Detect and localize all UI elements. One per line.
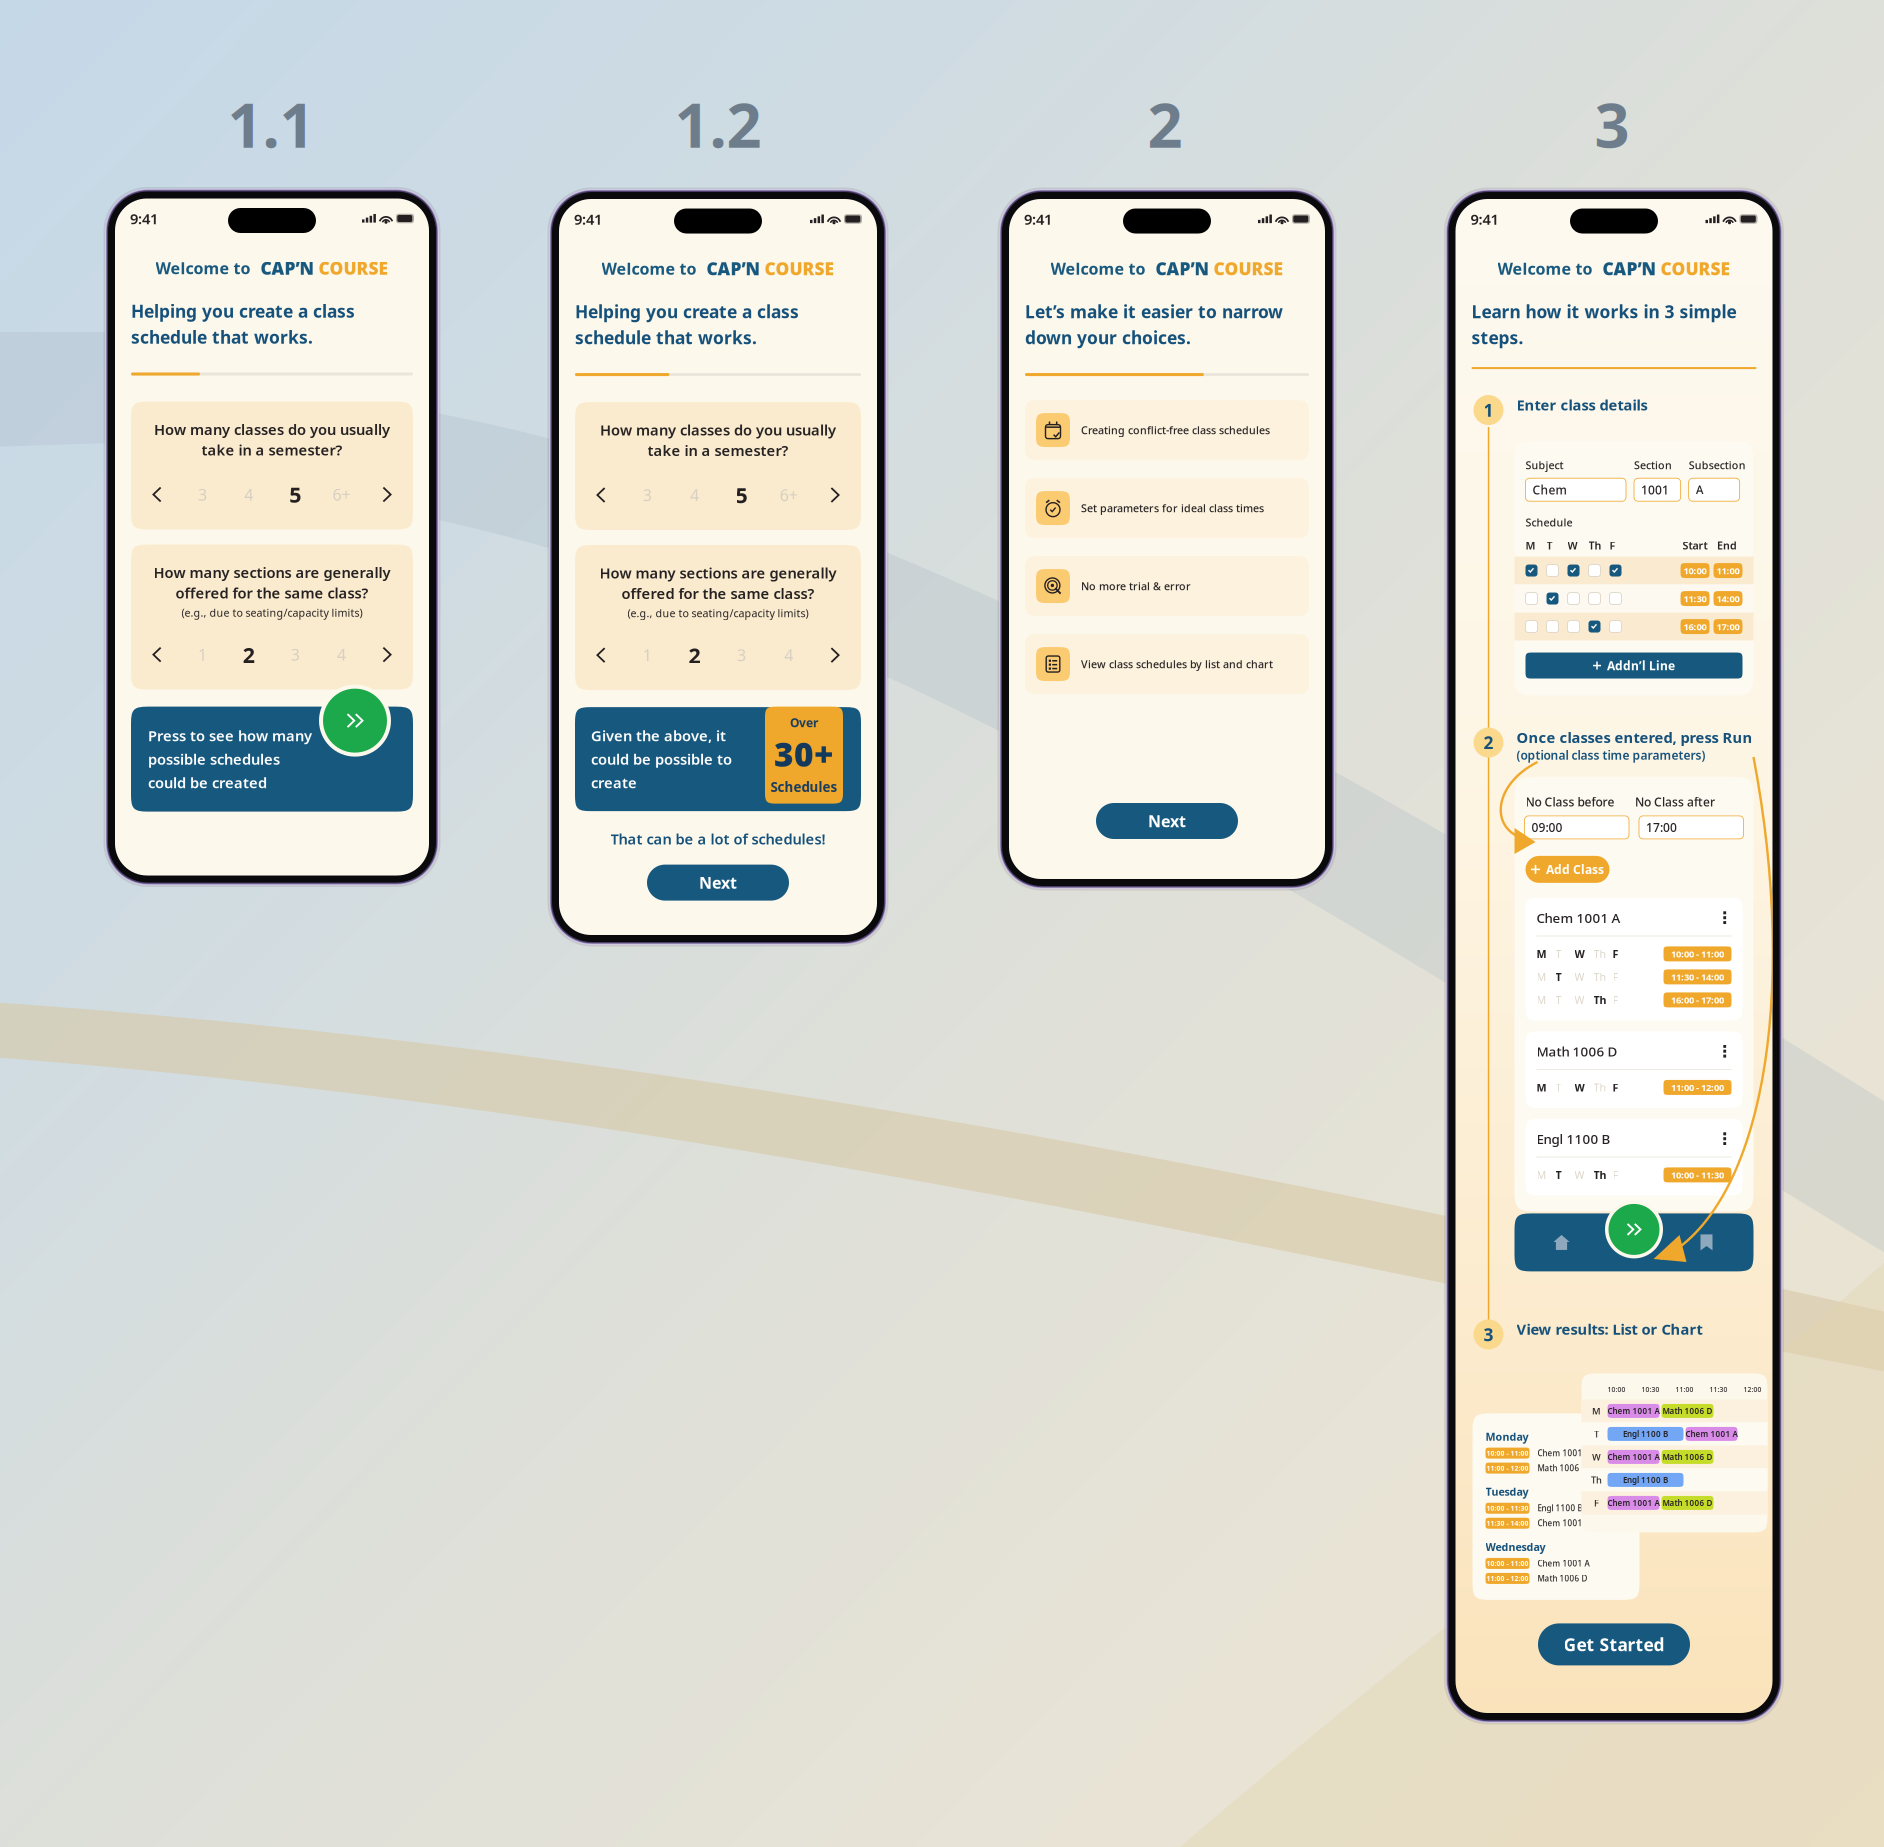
button[interactable]: 2: [680, 642, 708, 668]
button[interactable]: No more trial & error: [1025, 556, 1309, 616]
staticText: 11:30 - 14:00: [1671, 971, 1724, 983]
staticText: 10:30: [1641, 1385, 1659, 1394]
staticText: Helping you create a class: [131, 299, 355, 322]
button[interactable]: 2: [235, 642, 263, 668]
button[interactable]: Day toggle: [1567, 561, 1588, 581]
staticText: ⋮: [1716, 1042, 1732, 1060]
staticText: Given the above, it: [591, 726, 726, 745]
button[interactable]: 5: [728, 482, 756, 508]
staticText: W: [1574, 947, 1584, 961]
button[interactable]: Day toggle: [1609, 561, 1630, 581]
button[interactable]: Previous: [588, 482, 614, 508]
staticText: Helping you create a class: [575, 300, 799, 323]
button[interactable]: Day toggle: [1609, 589, 1630, 609]
button[interactable]: Next: [374, 481, 400, 507]
staticText: 3: [643, 484, 652, 506]
button[interactable]: 3: [188, 481, 216, 507]
staticText: A: [1696, 482, 1704, 498]
staticText: M: [1536, 970, 1546, 984]
button[interactable]: Day toggle: [1567, 589, 1588, 609]
button[interactable]: More options: [1717, 1131, 1731, 1147]
staticText: 17:00: [1646, 819, 1677, 835]
staticText: Th: [1593, 1168, 1606, 1182]
staticText: Th: [1593, 1080, 1606, 1094]
staticText: COURSE: [764, 257, 834, 280]
staticText: schedule that works.: [575, 326, 757, 349]
staticText: Section: [1634, 458, 1672, 472]
button[interactable]: Day toggle: [1588, 617, 1609, 637]
button[interactable]: More options: [1717, 1043, 1731, 1059]
button[interactable]: Addn’l Line: [1525, 653, 1742, 679]
staticText: W: [1574, 1080, 1584, 1094]
button[interactable]: Run: [319, 685, 391, 757]
button[interactable]: 3: [728, 642, 756, 668]
button[interactable]: 1: [633, 642, 661, 668]
staticText: Next: [1148, 810, 1186, 832]
staticText: 11:30: [1683, 592, 1706, 605]
button[interactable]: More options: [1717, 910, 1731, 926]
button[interactable]: Day toggle: [1525, 561, 1546, 581]
staticText: 11:00: [1716, 564, 1739, 577]
button[interactable]: Next: [1096, 803, 1238, 839]
button[interactable]: Day toggle: [1546, 617, 1567, 637]
button[interactable]: 4: [235, 481, 263, 507]
button[interactable]: Get Started: [1538, 1623, 1690, 1665]
staticText: COURSE: [1660, 257, 1730, 280]
staticText: T: [1594, 1428, 1599, 1440]
button[interactable]: 4: [328, 642, 356, 668]
button[interactable]: Previous: [588, 642, 614, 668]
button[interactable]: 4: [680, 482, 708, 508]
staticText: (optional class time parameters): [1516, 747, 1705, 763]
staticText: 10:00 - 11:00: [1671, 948, 1724, 960]
button[interactable]: Next: [822, 642, 848, 668]
button[interactable]: 4: [775, 642, 803, 668]
button[interactable]: Day toggle: [1525, 589, 1546, 609]
button[interactable]: Day toggle: [1525, 617, 1546, 637]
staticText: Engl 1100 B: [1623, 1429, 1668, 1439]
button[interactable]: Day toggle: [1567, 617, 1588, 637]
staticText: 4: [337, 644, 346, 665]
staticText: Th: [1591, 1474, 1602, 1486]
button[interactable]: Next: [822, 482, 848, 508]
staticText: Chem 1001 A: [1537, 1518, 1589, 1528]
button[interactable]: Day toggle: [1588, 589, 1609, 609]
button[interactable]: 6+: [328, 481, 356, 507]
button[interactable]: Next: [374, 642, 400, 668]
button[interactable]: Run: [1605, 1200, 1663, 1258]
staticText: Th: [1593, 947, 1606, 961]
staticText: 30+: [774, 732, 834, 776]
staticText: take in a semester?: [647, 440, 788, 460]
staticText: 6+: [780, 484, 798, 506]
staticText: M: [1536, 1168, 1546, 1182]
button[interactable]: 3: [281, 642, 309, 668]
button[interactable]: 6+: [775, 482, 803, 508]
button[interactable]: 3: [633, 482, 661, 508]
staticText: 5: [289, 480, 301, 509]
button[interactable]: Saved: [1685, 1221, 1727, 1263]
button[interactable]: Day toggle: [1546, 589, 1567, 609]
button[interactable]: Day toggle: [1588, 561, 1609, 581]
staticText: Chem: [1532, 482, 1566, 498]
button[interactable]: Creating conflict-free class schedules: [1025, 400, 1309, 460]
staticText: could be created: [148, 773, 267, 792]
button[interactable]: View class schedules by list and chart: [1025, 634, 1309, 694]
staticText: Schedule: [1525, 515, 1572, 529]
button[interactable]: 5: [281, 481, 309, 507]
staticText: 2: [1147, 83, 1182, 165]
button[interactable]: Previous: [144, 642, 170, 668]
staticText: (e.g., due to seating/capacity limits): [181, 605, 362, 620]
button[interactable]: Home: [1540, 1221, 1582, 1263]
button[interactable]: 1: [188, 642, 216, 668]
button[interactable]: Set parameters for ideal class times: [1025, 478, 1309, 538]
staticText: Next: [699, 872, 737, 893]
button[interactable]: Previous: [144, 481, 170, 507]
staticText: 2: [1483, 731, 1493, 754]
staticText: T: [1555, 1080, 1561, 1094]
button[interactable]: Day toggle: [1609, 617, 1630, 637]
staticText: 14:00: [1716, 592, 1739, 605]
staticText: Wednesday: [1485, 1540, 1545, 1554]
button[interactable]: Add Class: [1525, 856, 1609, 883]
staticText: 3: [1483, 1323, 1493, 1346]
button[interactable]: Next: [647, 865, 789, 901]
button[interactable]: Day toggle: [1546, 561, 1567, 581]
